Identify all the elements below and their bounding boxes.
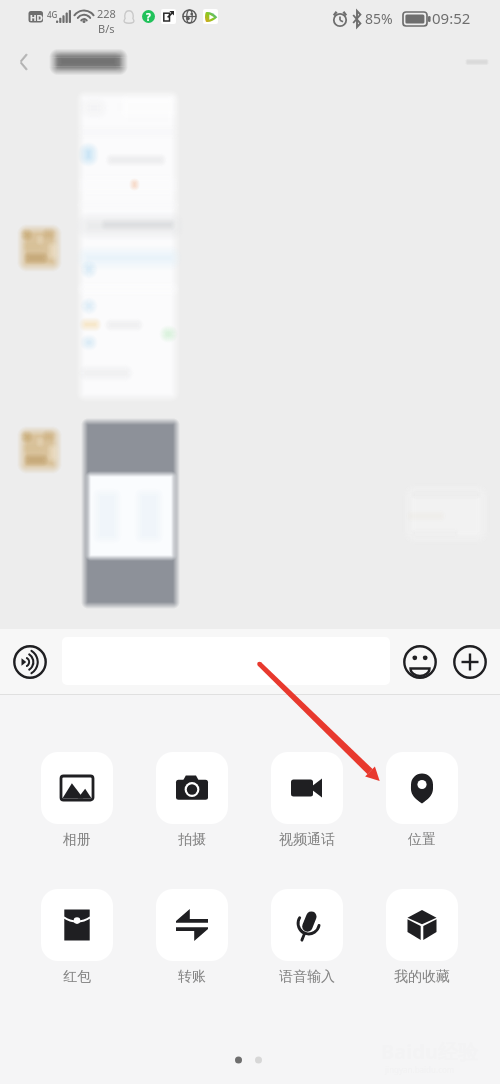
other: Album xyxy=(41,752,113,824)
button[interactable]: Location xyxy=(386,752,458,849)
staticText: 85% xyxy=(365,9,393,28)
staticText: B/s xyxy=(98,21,115,36)
other: Red packet xyxy=(41,889,113,961)
button[interactable]: Voice input xyxy=(8,640,52,684)
other: Location xyxy=(386,752,458,824)
button[interactable]: Red packet xyxy=(41,889,113,986)
button[interactable]: Favorites xyxy=(386,889,458,986)
staticText: 228 xyxy=(97,6,116,21)
staticText: 相册 xyxy=(63,831,91,849)
other: Voice input xyxy=(271,889,343,961)
other: Camera xyxy=(156,752,228,824)
staticText: 09:52 xyxy=(432,8,471,28)
button[interactable]: More functions xyxy=(448,640,492,684)
staticText: 位置 xyxy=(408,831,436,849)
other: Favorites xyxy=(386,889,458,961)
staticText: 我的收藏 xyxy=(394,968,450,986)
staticText: ? xyxy=(146,10,151,23)
button[interactable]: Video call xyxy=(271,752,343,849)
other: Transfer xyxy=(156,889,228,961)
button[interactable]: Back xyxy=(0,40,44,84)
button[interactable] xyxy=(62,637,390,685)
staticText: 拍摄 xyxy=(178,831,206,849)
staticText: 转账 xyxy=(178,968,206,986)
button[interactable]: Album xyxy=(41,752,113,849)
button[interactable]: Emoji xyxy=(398,640,442,684)
button[interactable]: More options xyxy=(454,39,500,85)
button[interactable]: Camera xyxy=(156,752,228,849)
staticText: 视频通话 xyxy=(279,831,335,849)
other: Video call xyxy=(271,752,343,824)
staticText: 4G xyxy=(47,9,58,20)
staticText: 红包 xyxy=(63,968,91,986)
staticText: HD xyxy=(30,12,43,24)
staticText: 语音输入 xyxy=(279,968,335,986)
button[interactable]: Transfer xyxy=(156,889,228,986)
button[interactable]: Voice input xyxy=(271,889,343,986)
